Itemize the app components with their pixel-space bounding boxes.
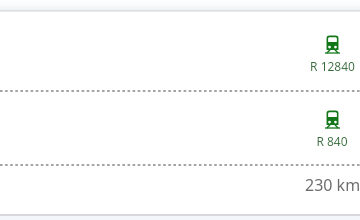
button[interactable]: 230 km (0, 166, 360, 214)
button[interactable]: Train service R 840 (302, 109, 360, 149)
staticText: R 12840 (310, 58, 355, 74)
other: Train service R 840 (322, 109, 343, 130)
button[interactable]: Train service R 12840 (302, 34, 360, 74)
staticText: 230 km (305, 174, 360, 196)
staticText: R 840 (316, 133, 348, 149)
other: Train service R 12840 (322, 34, 343, 55)
